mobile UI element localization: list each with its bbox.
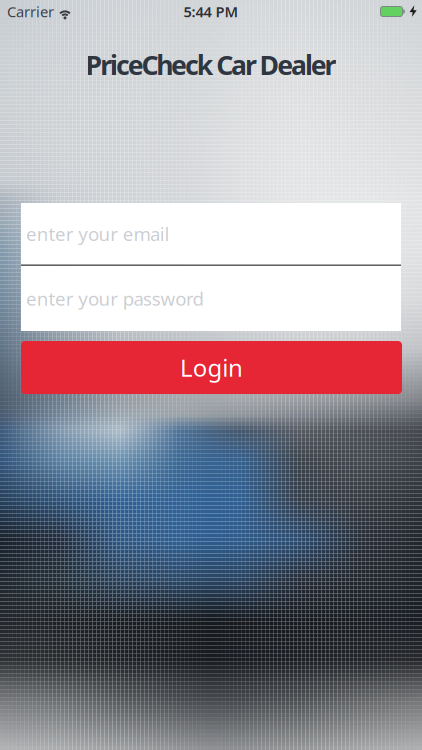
button[interactable]: Login (21, 341, 402, 394)
button[interactable]: enter your email (21, 203, 401, 264)
staticText: enter your email (26, 221, 169, 246)
staticText: 5:44 PM (183, 2, 238, 21)
staticText: Login (180, 352, 243, 383)
staticText: PriceCheck Car Dealer (85, 47, 336, 82)
staticText: Carrier (7, 2, 54, 21)
button[interactable]: enter your password (21, 266, 401, 331)
staticText: enter your password (26, 286, 204, 311)
